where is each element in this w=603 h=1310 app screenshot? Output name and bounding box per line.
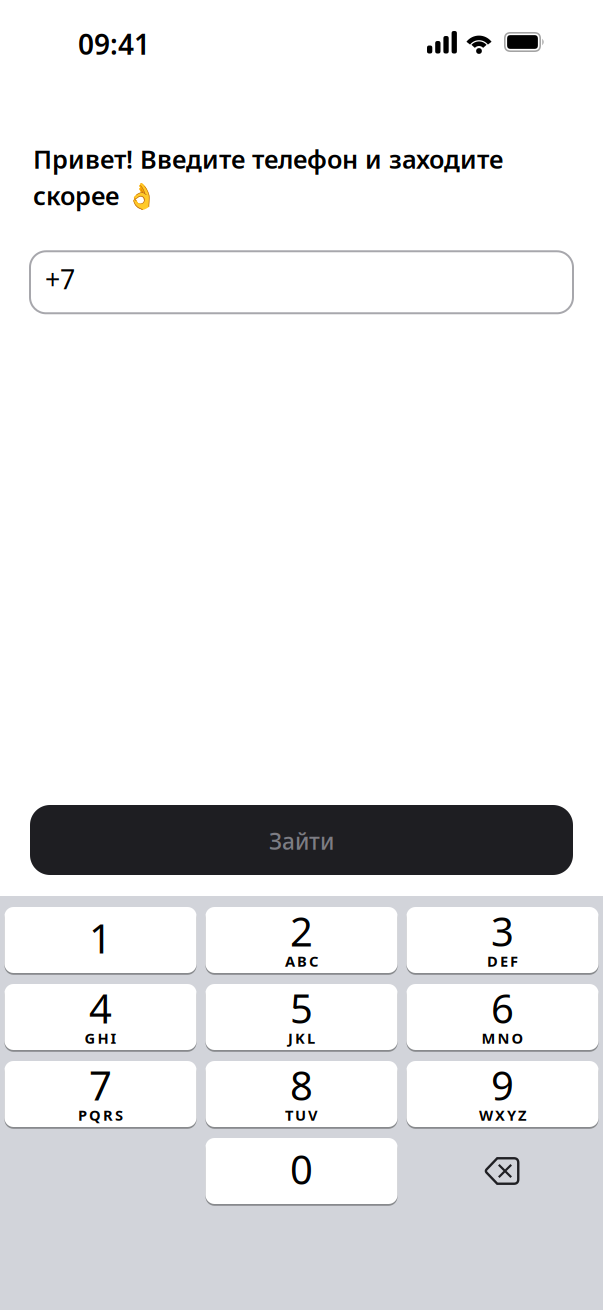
button[interactable]: 3 xyxy=(406,907,598,973)
staticText: T U V xyxy=(285,1105,318,1125)
staticText: +7 xyxy=(45,261,75,296)
staticText: 8 xyxy=(290,1058,313,1111)
staticText: W X Y Z xyxy=(479,1105,526,1125)
staticText: A B C xyxy=(285,951,318,971)
button[interactable]: 6 xyxy=(406,984,598,1050)
staticText: 5 xyxy=(290,981,313,1034)
button[interactable]: 1 xyxy=(4,907,196,973)
button[interactable]: Delete xyxy=(406,1138,598,1204)
staticText: 6 xyxy=(491,981,514,1034)
staticText: Зайти xyxy=(269,826,334,856)
staticText: P Q R S xyxy=(78,1105,123,1125)
staticText: 0 xyxy=(290,1142,313,1195)
staticText: 09:41 xyxy=(78,25,150,63)
button[interactable]: 7 xyxy=(4,1061,196,1127)
staticText: M N O xyxy=(481,1028,523,1048)
staticText: J K L xyxy=(288,1028,315,1048)
staticText: 4 xyxy=(89,981,112,1034)
staticText: 1 xyxy=(89,911,112,964)
button[interactable]: 5 xyxy=(205,984,397,1050)
button[interactable]: Зайти xyxy=(0,805,603,875)
staticText: 9 xyxy=(491,1058,514,1111)
staticText: G H I xyxy=(84,1028,116,1048)
staticText: 3 xyxy=(491,904,514,957)
button[interactable]: 4 xyxy=(4,984,196,1050)
staticText: Привет! Введите телефон и заходите скоре… xyxy=(33,142,503,212)
button[interactable]: 9 xyxy=(406,1061,598,1127)
button[interactable]: 0 xyxy=(205,1138,397,1204)
button[interactable]: 2 xyxy=(205,907,397,973)
staticText: 7 xyxy=(89,1058,112,1111)
staticText: D E F xyxy=(487,951,518,971)
staticText: 2 xyxy=(290,904,313,957)
button[interactable]: 8 xyxy=(205,1061,397,1127)
button[interactable]: +7 xyxy=(0,251,603,313)
